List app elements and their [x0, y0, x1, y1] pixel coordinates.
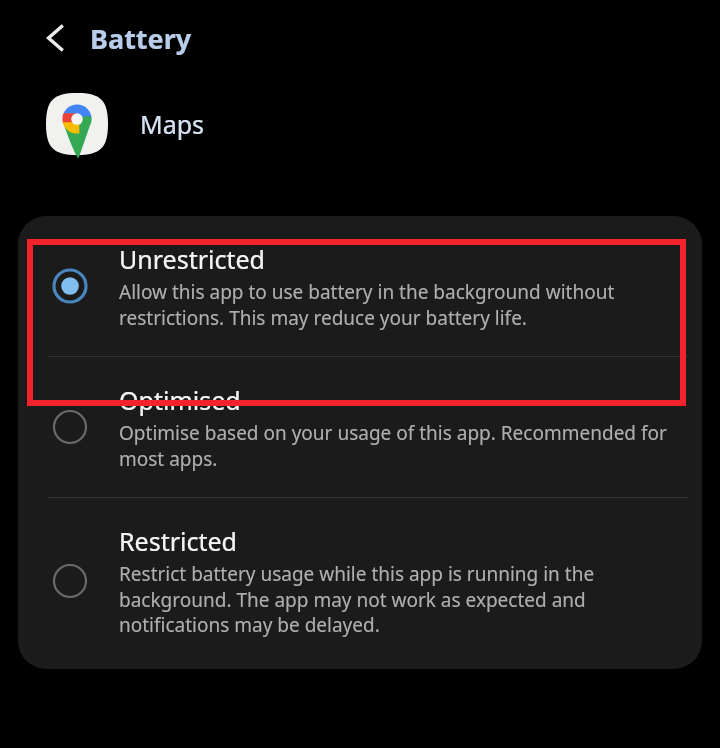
button[interactable]: Optimised [18, 357, 702, 497]
staticText: Restrict battery usage while this app is… [119, 561, 676, 637]
button[interactable]: Maps [0, 76, 720, 172]
button[interactable]: Unrestricted [18, 216, 702, 356]
staticText: Restricted [119, 524, 237, 558]
staticText: Optimised [119, 383, 241, 417]
staticText: Battery [90, 20, 192, 57]
button[interactable]: Back [30, 12, 82, 64]
button[interactable]: Restricted [18, 498, 702, 669]
staticText: Allow this app to use battery in the bac… [119, 279, 676, 330]
staticText: Unrestricted [119, 242, 265, 276]
staticText: Optimise based on your usage of this app… [119, 420, 676, 471]
staticText: Maps [140, 107, 205, 141]
